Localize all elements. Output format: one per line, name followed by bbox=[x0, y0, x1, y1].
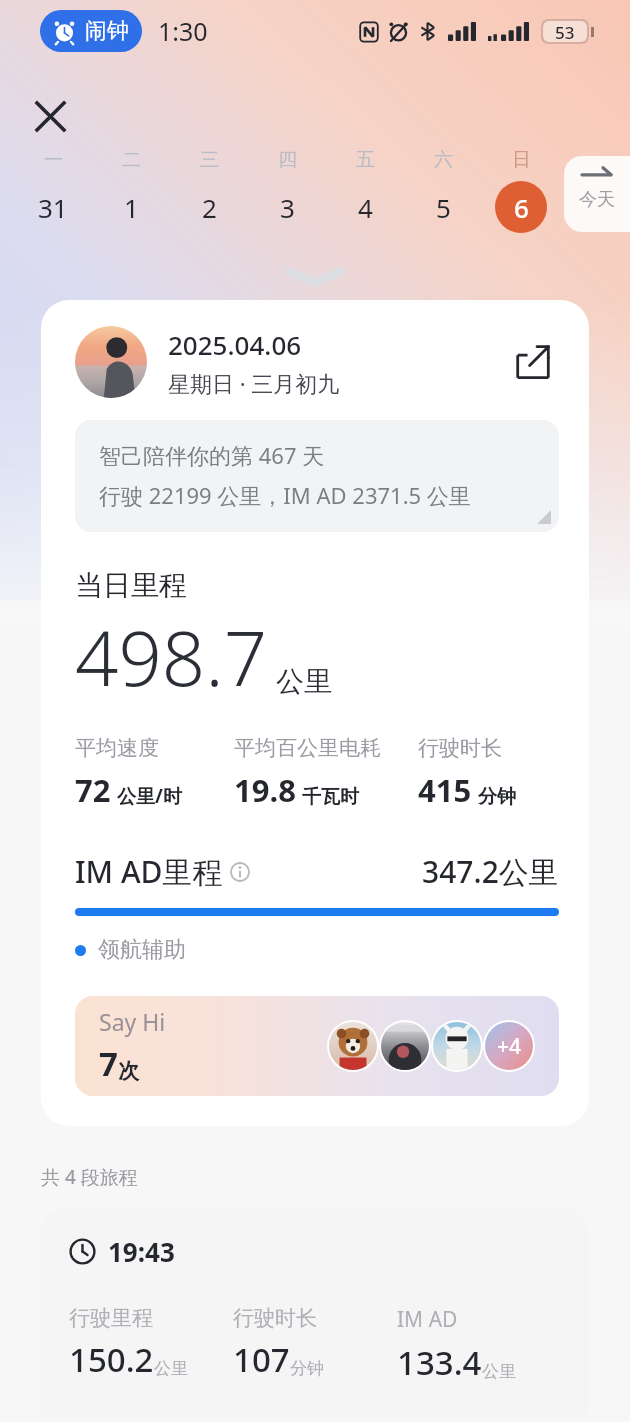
staticText: 日 bbox=[512, 148, 531, 172]
staticText: 133.4 bbox=[397, 1340, 482, 1385]
staticText: 53 bbox=[555, 21, 575, 42]
staticText: 二 bbox=[122, 148, 141, 172]
staticText: +4 bbox=[497, 1032, 522, 1061]
staticText: 闹钟 bbox=[85, 17, 129, 45]
staticText: 共 4 段旅程 bbox=[41, 1164, 138, 1190]
staticText: 19:43 bbox=[108, 1234, 175, 1269]
staticText: 2 bbox=[202, 190, 217, 225]
staticText: 智己陪伴你的第 467 天 bbox=[99, 440, 325, 470]
button[interactable]: 四 bbox=[248, 148, 326, 233]
button[interactable]: 闹钟 bbox=[40, 10, 142, 52]
staticText: 1 bbox=[124, 190, 139, 225]
staticText: 公里 bbox=[276, 664, 332, 699]
button[interactable]: 一 bbox=[14, 148, 92, 233]
staticText: 一 bbox=[44, 148, 63, 172]
staticText: 次 bbox=[118, 1058, 139, 1084]
staticText: IM AD里程 bbox=[75, 851, 223, 892]
staticText: 107 bbox=[233, 1337, 290, 1382]
staticText: 498.7 bbox=[75, 605, 268, 709]
staticText: 6 bbox=[514, 190, 529, 225]
button[interactable]: 今天 bbox=[564, 156, 630, 232]
staticText: 4 bbox=[358, 190, 373, 225]
button[interactable]: 六 bbox=[404, 148, 482, 233]
staticText: 2025.04.06 bbox=[168, 327, 302, 362]
staticText: 星期日 · 三月初九 bbox=[168, 368, 340, 398]
staticText: 分钟 bbox=[290, 1358, 324, 1379]
button[interactable]: 智己陪伴你的第 467 天 bbox=[75, 420, 559, 532]
button[interactable]: IM AD里程 bbox=[75, 851, 559, 892]
staticText: 三 bbox=[200, 148, 219, 172]
button[interactable]: 五 bbox=[326, 148, 404, 233]
staticText: 150.2 bbox=[69, 1337, 154, 1382]
staticText: 分钟 bbox=[478, 785, 516, 809]
staticText: 五 bbox=[356, 148, 375, 172]
staticText: 347.2公里 bbox=[422, 851, 559, 892]
staticText: Say Hi bbox=[99, 1006, 166, 1037]
staticText: 公里 bbox=[154, 1358, 188, 1379]
staticText: 平均百公里电耗 bbox=[234, 735, 381, 761]
button[interactable]: 19:43 bbox=[41, 1208, 589, 1415]
staticText: 四 bbox=[278, 148, 297, 172]
staticText: 1:30 bbox=[158, 14, 208, 48]
staticText: 公里/时 bbox=[117, 783, 182, 809]
staticText: 19.8 bbox=[234, 769, 296, 811]
staticText: 3 bbox=[280, 190, 295, 225]
staticText: 当日里程 bbox=[75, 568, 187, 603]
button[interactable]: Say Hi bbox=[75, 996, 559, 1096]
staticText: IM AD bbox=[397, 1305, 458, 1334]
button[interactable]: Share bbox=[507, 336, 559, 388]
staticText: 行驶时长 bbox=[418, 735, 502, 761]
button[interactable]: 二 bbox=[92, 148, 170, 233]
staticText: 5 bbox=[436, 190, 451, 225]
staticText: 行驶时长 bbox=[233, 1305, 317, 1331]
staticText: 公里 bbox=[482, 1361, 516, 1382]
staticText: 7 bbox=[99, 1041, 118, 1086]
staticText: 行驶里程 bbox=[69, 1305, 153, 1331]
button[interactable]: 日 bbox=[482, 148, 560, 233]
staticText: 今天 bbox=[579, 188, 615, 211]
staticText: 行驶 22199 公里，IM AD 2371.5 公里 bbox=[99, 480, 471, 510]
staticText: 千瓦时 bbox=[302, 785, 359, 809]
button[interactable]: Close bbox=[24, 90, 76, 142]
staticText: 平均速度 bbox=[75, 735, 159, 761]
staticText: 415 bbox=[418, 769, 472, 811]
staticText: 六 bbox=[434, 148, 453, 172]
staticText: 领航辅助 bbox=[98, 936, 186, 964]
staticText: 72 bbox=[75, 769, 111, 811]
staticText: 31 bbox=[38, 190, 68, 225]
button[interactable]: 三 bbox=[170, 148, 248, 233]
